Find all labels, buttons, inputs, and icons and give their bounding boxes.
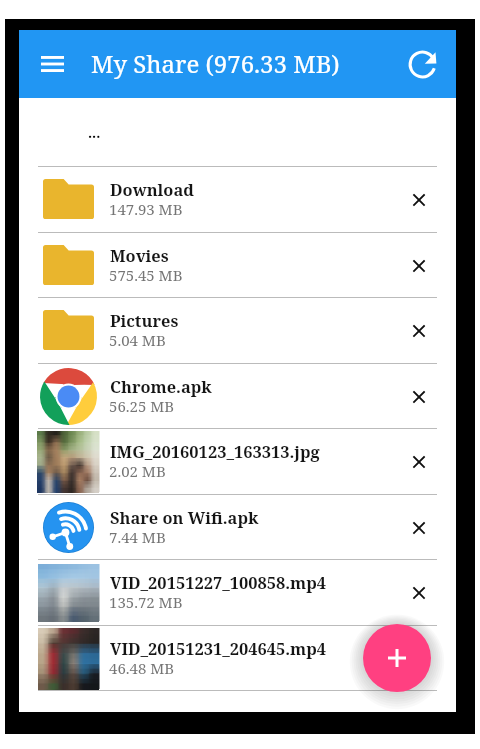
staticText: VID_20151227_100858.mp4	[110, 571, 327, 593]
staticText: Chrome.apk	[110, 375, 212, 397]
button[interactable]: Movies	[19, 233, 456, 297]
button[interactable]: Remove Share on Wifi.apk	[399, 508, 439, 548]
staticText: VID_20151231_204645.mp4	[110, 637, 327, 659]
button[interactable]: Remove VID_20151227_100858.mp4	[399, 573, 439, 613]
button[interactable]: Open navigation menu	[30, 42, 74, 86]
staticText: Share on Wifi.apk	[110, 506, 259, 528]
button[interactable]: Remove Pictures	[399, 311, 439, 351]
button[interactable]: Remove VID_20151231_204645.mp4	[399, 639, 439, 679]
staticText: 7.44 MB	[109, 527, 166, 547]
staticText: Pictures	[110, 309, 179, 331]
staticText: 2.02 MB	[109, 461, 166, 481]
staticText: 135.72 MB	[109, 592, 183, 612]
button[interactable]: Download	[19, 167, 456, 231]
staticText: Movies	[110, 244, 169, 266]
button[interactable]: Chrome.apk	[19, 364, 456, 428]
button[interactable]: Remove Movies	[399, 246, 439, 286]
button[interactable]: Refresh	[400, 42, 444, 86]
button[interactable]: Share on Wifi.apk	[19, 495, 456, 559]
staticText: 5.04 MB	[109, 330, 166, 350]
staticText: 147.93 MB	[109, 199, 183, 219]
button[interactable]: ...	[19, 98, 456, 166]
button[interactable]: Pictures	[19, 298, 456, 362]
staticText: Download	[110, 178, 194, 200]
staticText: ...	[88, 123, 101, 142]
staticText: My Share (976.33 MB)	[91, 47, 340, 80]
button[interactable]: Remove Chrome.apk	[399, 377, 439, 417]
staticText: 46.48 MB	[109, 658, 175, 678]
staticText: IMG_20160123_163313.jpg	[110, 440, 320, 462]
button[interactable]: Remove Download	[399, 180, 439, 220]
button[interactable]: Add	[363, 624, 431, 692]
staticText: 575.45 MB	[109, 265, 183, 285]
button[interactable]: VID_20151231_204645.mp4	[19, 626, 456, 690]
button[interactable]: Remove IMG_20160123_163313.jpg	[399, 442, 439, 482]
button[interactable]: IMG_20160123_163313.jpg	[19, 429, 456, 493]
staticText: 56.25 MB	[109, 396, 175, 416]
button[interactable]: VID_20151227_100858.mp4	[19, 560, 456, 624]
